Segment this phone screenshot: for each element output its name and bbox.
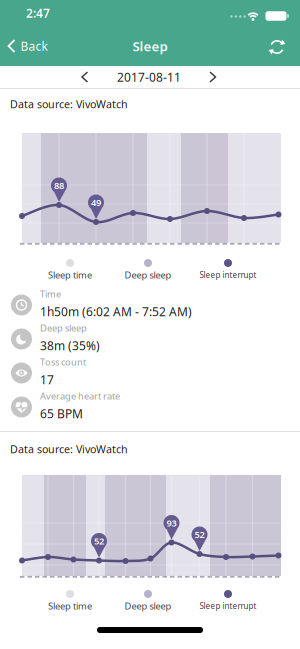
staticText: 2:47	[26, 5, 50, 21]
staticText: 1h50m (6:02 AM - 7:52 AM)	[40, 303, 192, 319]
button[interactable]: Refresh	[266, 36, 288, 58]
staticText: 17	[40, 371, 54, 387]
staticText: Time	[40, 288, 61, 300]
button[interactable]: Next day	[208, 71, 218, 83]
button[interactable]: 2017-08-11	[117, 69, 181, 85]
staticText: Sleep interrupt	[199, 270, 256, 280]
staticText: 65 BPM	[40, 405, 83, 421]
staticText: Sleep	[132, 37, 167, 55]
staticText: Deep sleep	[124, 600, 171, 612]
button[interactable]: Back	[6, 38, 47, 54]
staticText: 88	[54, 179, 64, 192]
staticText: Sleep time	[48, 269, 92, 281]
staticText: Toss count	[40, 356, 86, 368]
staticText: 93	[166, 517, 176, 529]
staticText: Sleep time	[48, 600, 92, 612]
staticText: Data source: VivoWatch	[10, 442, 128, 456]
staticText: 52	[194, 528, 204, 541]
staticText: 52	[94, 535, 104, 547]
staticText: Sleep interrupt	[199, 601, 256, 611]
staticText: Average heart rate	[40, 390, 120, 402]
staticText: 38m (35%)	[40, 337, 100, 353]
staticText: Deep sleep	[40, 322, 87, 334]
staticText: Data source: VivoWatch	[10, 97, 128, 111]
staticText: 2017-08-11	[117, 69, 181, 85]
staticText: 49	[91, 196, 101, 209]
staticText: Back	[20, 38, 47, 54]
button[interactable]: Previous day	[80, 71, 90, 83]
staticText: Deep sleep	[124, 269, 171, 281]
